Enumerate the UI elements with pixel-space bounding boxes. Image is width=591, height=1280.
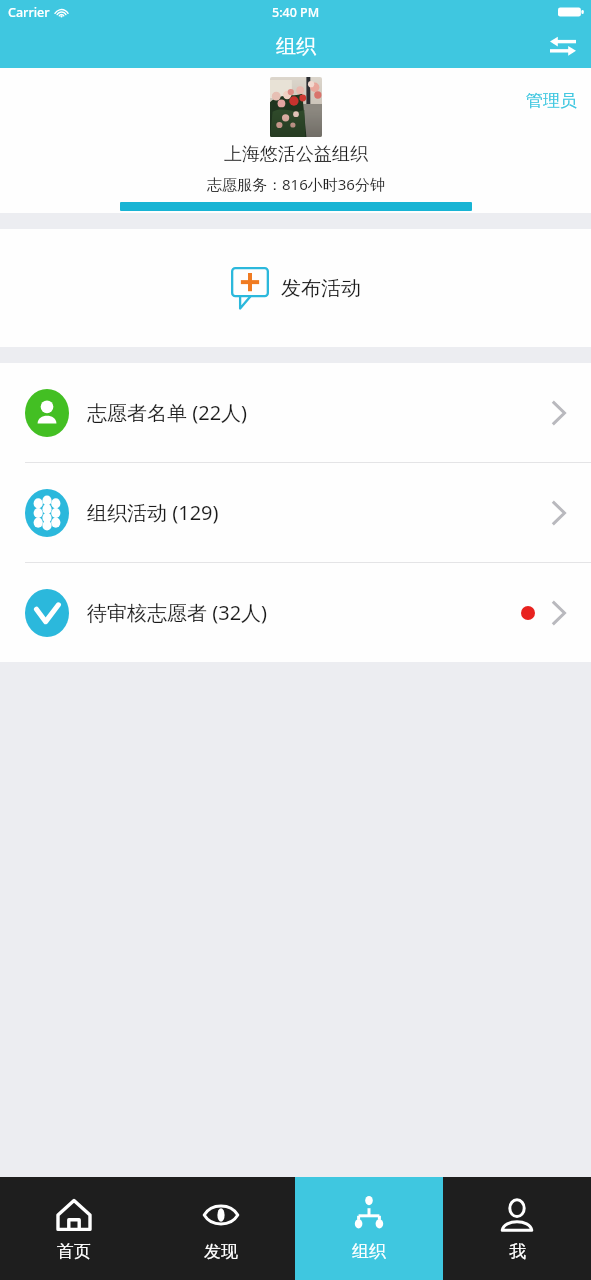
staticText: 发布活动 — [281, 276, 361, 301]
staticText: 组织 — [352, 1241, 386, 1262]
button[interactable]: Organization avatar — [270, 77, 322, 137]
staticText: 志愿者名单 (22人) — [87, 399, 551, 426]
staticText: 我 — [509, 1241, 526, 1262]
staticText: 发现 — [204, 1241, 238, 1262]
button[interactable]: Switch organization — [535, 24, 591, 68]
button[interactable]: 管理员 — [526, 90, 577, 111]
staticText: 组织 — [276, 34, 316, 59]
staticText: 管理员 — [526, 90, 577, 111]
button[interactable]: 我 — [443, 1177, 591, 1280]
staticText: Carrier — [8, 4, 50, 21]
staticText: 待审核志愿者 (32人) — [87, 599, 521, 626]
button[interactable]: 发布活动 — [0, 229, 591, 347]
staticText: 5:40 PM — [272, 4, 320, 21]
staticText: 上海悠活公益组织 — [224, 143, 368, 166]
staticText: 组织活动 (129) — [87, 499, 551, 526]
button[interactable]: 组织 — [295, 1177, 443, 1280]
button[interactable]: 发现 — [147, 1177, 295, 1280]
button[interactable]: 组织活动 (129) — [0, 463, 591, 562]
button[interactable]: 志愿者名单 (22人) — [0, 363, 591, 462]
staticText: 首页 — [57, 1241, 91, 1262]
button[interactable]: 首页 — [0, 1177, 147, 1280]
button[interactable]: 待审核志愿者 (32人) — [0, 563, 591, 662]
staticText: 志愿服务：816小时36分钟 — [207, 174, 385, 194]
